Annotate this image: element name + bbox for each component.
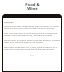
button[interactable]: RECIPES [4,20,14,23]
staticText: Pair the dish with a crisp white wine, c… [4,31,60,37]
button[interactable]: Status bar [2,14,62,18]
staticText: Finish with a simple salad of bitter gre… [4,38,60,44]
button[interactable]: Food & Wine [25,2,40,11]
staticText: Grilled summer vegetables with a splash … [4,24,60,30]
button[interactable]: • • • [30,53,34,56]
staticText: Leftovers keep well for a day; reheat ge… [4,45,60,51]
